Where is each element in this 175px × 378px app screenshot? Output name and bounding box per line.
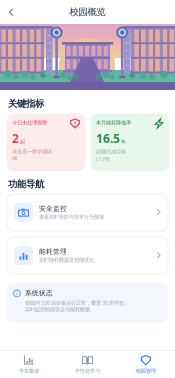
staticText: 今日未处理报警 <box>12 119 47 126</box>
button[interactable]: 个性化学习 <box>58 351 117 378</box>
staticText: 系统状态 <box>25 289 53 297</box>
staticText: 功能导航 <box>8 178 44 190</box>
staticText: 2 <box>12 130 19 146</box>
staticText: 校园内 520 台设备运行正常，覆盖 30 所学校， 实时监控校园安全与能耗数据… <box>25 299 129 313</box>
staticText: 安全监控 <box>39 205 67 213</box>
button[interactable]: 返回 <box>0 1 22 23</box>
staticText: 校园管理 <box>136 368 156 374</box>
staticText: 校园概览 <box>69 6 105 18</box>
staticText: % <box>121 138 125 145</box>
button[interactable]: 安全监控 <box>7 194 168 231</box>
staticText: 能耗管理 <box>39 248 67 256</box>
staticText: 本月能耗降低率 <box>96 119 131 126</box>
staticText: 关键指标 <box>8 98 44 109</box>
staticText: 学生数据 <box>19 368 39 374</box>
button[interactable]: 学生数据 <box>0 351 58 378</box>
staticText: 16.5 <box>96 130 120 146</box>
staticText: 实时能耗数据及智能优化 <box>39 257 94 263</box>
staticText: 起 <box>20 138 25 145</box>
staticText: 涉及高一教学楼区 域 <box>12 148 52 161</box>
button[interactable]: 能耗管理 <box>7 237 168 274</box>
staticText: 超额完成目标 (15%) <box>96 148 126 162</box>
button[interactable]: 校园管理 <box>117 351 175 378</box>
staticText: 查看实时安防与异常行为预警 <box>39 214 104 220</box>
staticText: 个性化学习 <box>75 368 100 374</box>
